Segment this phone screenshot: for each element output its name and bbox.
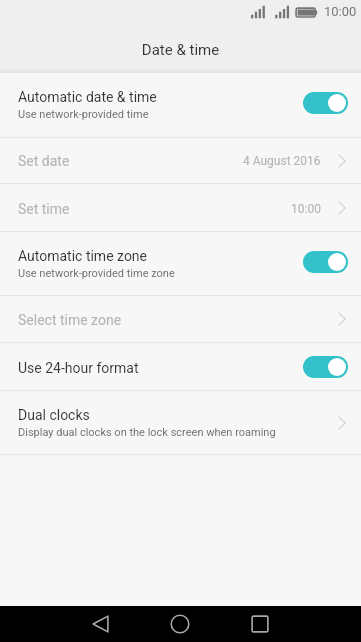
staticText: Use network-provided time — [18, 108, 149, 121]
staticText: 10:00 — [291, 202, 321, 216]
staticText: Automatic time zone — [18, 248, 148, 264]
button[interactable]: Automatic date & time — [0, 73, 361, 137]
staticText: Dual clocks — [18, 407, 90, 423]
button[interactable]: Set time — [0, 184, 361, 231]
staticText: Display dual clocks on the lock screen w… — [18, 426, 276, 439]
button[interactable]: Toggle — [303, 356, 348, 378]
button[interactable]: Back — [60, 606, 140, 642]
staticText: Set time — [18, 201, 70, 217]
staticText: Set date — [18, 153, 70, 169]
button[interactable]: Automatic time zone — [0, 232, 361, 295]
button[interactable]: Toggle — [303, 251, 348, 273]
button[interactable]: Recents — [220, 606, 300, 642]
staticText: Use 24-hour format — [18, 360, 139, 376]
staticText: 10:00 — [324, 4, 357, 19]
button[interactable]: Select time zone — [0, 296, 361, 342]
staticText: Use network-provided time zone — [18, 267, 175, 280]
button[interactable]: Toggle — [303, 92, 348, 114]
staticText: Date & time — [0, 41, 361, 59]
button[interactable]: Home — [140, 606, 220, 642]
staticText: Automatic date & time — [18, 89, 157, 105]
button[interactable]: Set date — [0, 138, 361, 183]
button[interactable]: Dual clocks — [0, 391, 361, 454]
button[interactable]: Use 24-hour format — [0, 343, 361, 390]
staticText: 4 August 2016 — [243, 154, 321, 168]
staticText: Select time zone — [18, 312, 122, 328]
